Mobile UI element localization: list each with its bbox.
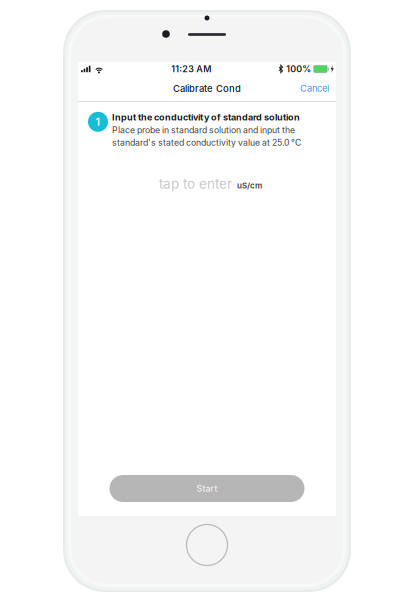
staticText: Calibrate Cond: [173, 83, 241, 94]
staticText: Input the conductivity of standard solut…: [112, 112, 300, 123]
staticText: Place probe in standard solution and inp…: [112, 125, 295, 135]
staticText: Start: [196, 483, 217, 494]
staticText: uS/cm: [237, 181, 262, 191]
button[interactable]: Start: [109, 475, 304, 502]
staticText: standard's stated conductivity value at …: [112, 137, 301, 148]
button[interactable]: Cancel: [293, 76, 336, 101]
staticText: 11:23 AM: [171, 64, 211, 74]
staticText: Cancel: [300, 83, 329, 94]
staticText: 1: [95, 115, 100, 128]
staticText: 100%: [286, 64, 311, 74]
staticText: tap to enter: [159, 176, 232, 192]
